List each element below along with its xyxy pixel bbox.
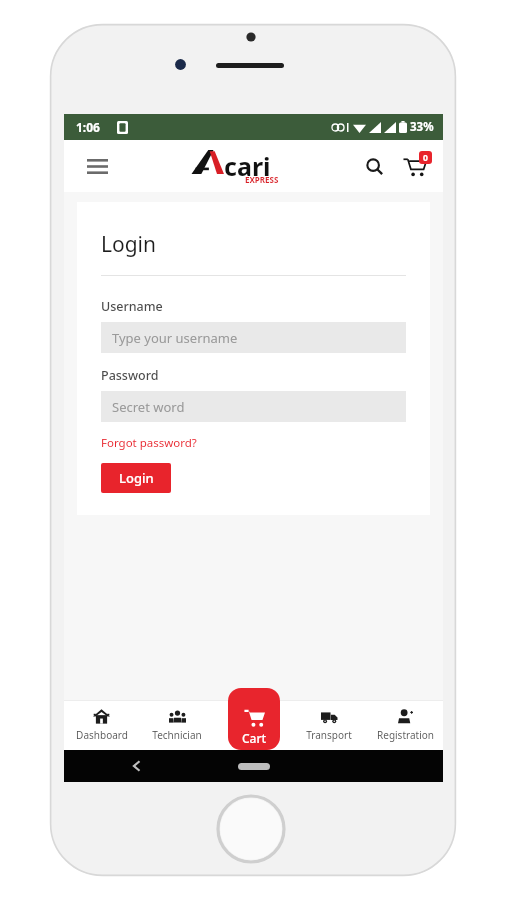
button[interactable]: Type your username xyxy=(101,322,406,353)
button[interactable]: Cart xyxy=(228,688,280,750)
staticText: Forgot password? xyxy=(101,435,197,451)
button[interactable]: Search xyxy=(357,149,391,183)
button[interactable]: Technician xyxy=(139,700,215,750)
staticText: cari xyxy=(224,149,271,183)
staticText: Type your username xyxy=(112,329,238,347)
button[interactable]: Shopping cart, 0 items xyxy=(397,148,433,184)
staticText: Transport xyxy=(306,728,352,742)
staticText: Password xyxy=(101,367,159,384)
button[interactable]: Back xyxy=(130,759,144,773)
button[interactable]: Transport xyxy=(291,700,367,750)
staticText: Login xyxy=(119,469,154,487)
button[interactable]: Registration xyxy=(367,700,443,750)
staticText: Technician xyxy=(152,728,202,742)
button[interactable]: Open navigation menu xyxy=(80,149,114,183)
staticText: EXPRESS xyxy=(245,174,279,185)
staticText: 33% xyxy=(410,119,434,135)
staticText: Username xyxy=(101,298,163,315)
button[interactable]: Forgot password? xyxy=(101,435,197,451)
staticText: Registration xyxy=(377,728,434,742)
staticText: Dashboard xyxy=(76,728,128,742)
button[interactable]: Dashboard xyxy=(64,700,139,750)
staticText: Login xyxy=(101,230,157,259)
staticText: 1:06 xyxy=(76,119,100,135)
button[interactable]: Login xyxy=(101,463,171,493)
button[interactable]: Acari Express home xyxy=(188,146,304,186)
staticText: Secret word xyxy=(112,398,185,416)
staticText: Cart xyxy=(242,730,267,746)
staticText: 0 xyxy=(423,152,428,164)
button[interactable]: Secret word xyxy=(101,391,406,422)
button[interactable]: Home xyxy=(238,763,270,770)
